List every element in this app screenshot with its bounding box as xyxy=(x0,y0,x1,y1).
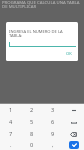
staticText: 1 xyxy=(9,106,13,114)
staticText: 6 xyxy=(51,118,55,126)
staticText: 5 xyxy=(30,118,34,126)
button[interactable]: 7 xyxy=(0,128,21,140)
button[interactable]: 2 xyxy=(21,104,42,116)
staticText: OK xyxy=(66,51,72,57)
button[interactable]: 9 xyxy=(42,128,63,140)
button[interactable]: Enter xyxy=(69,141,79,149)
staticText: 2 xyxy=(30,106,34,114)
staticText: . xyxy=(10,141,12,149)
button[interactable]: 1 xyxy=(0,104,21,116)
staticText: 0 xyxy=(30,141,34,149)
staticText: INGRESA EL NUMERO DE LA TABLA: xyxy=(9,29,64,39)
button[interactable]: Backspace xyxy=(63,128,84,140)
button[interactable]: 5 xyxy=(21,116,42,128)
staticText: 7 xyxy=(9,130,13,138)
button[interactable]: 3 xyxy=(42,104,63,116)
staticText: 3 xyxy=(51,106,55,114)
staticText: PROGRAMA QUE CALCULA UNA TABLA DE MULTIP… xyxy=(2,0,84,10)
button[interactable]: Space xyxy=(63,116,84,128)
button[interactable]: , xyxy=(42,140,63,150)
staticText: 4 xyxy=(9,118,13,126)
button[interactable]: 0 xyxy=(21,140,42,150)
button[interactable]: 4 xyxy=(0,116,21,128)
button[interactable]: . xyxy=(0,140,21,150)
button[interactable]: OK xyxy=(66,51,72,57)
staticText: 8 xyxy=(30,130,34,138)
button[interactable]: 6 xyxy=(42,116,63,128)
staticText: , xyxy=(52,141,54,149)
button[interactable]: Minus xyxy=(63,104,84,116)
staticText: 9 xyxy=(51,130,55,138)
button[interactable]: 8 xyxy=(21,128,42,140)
